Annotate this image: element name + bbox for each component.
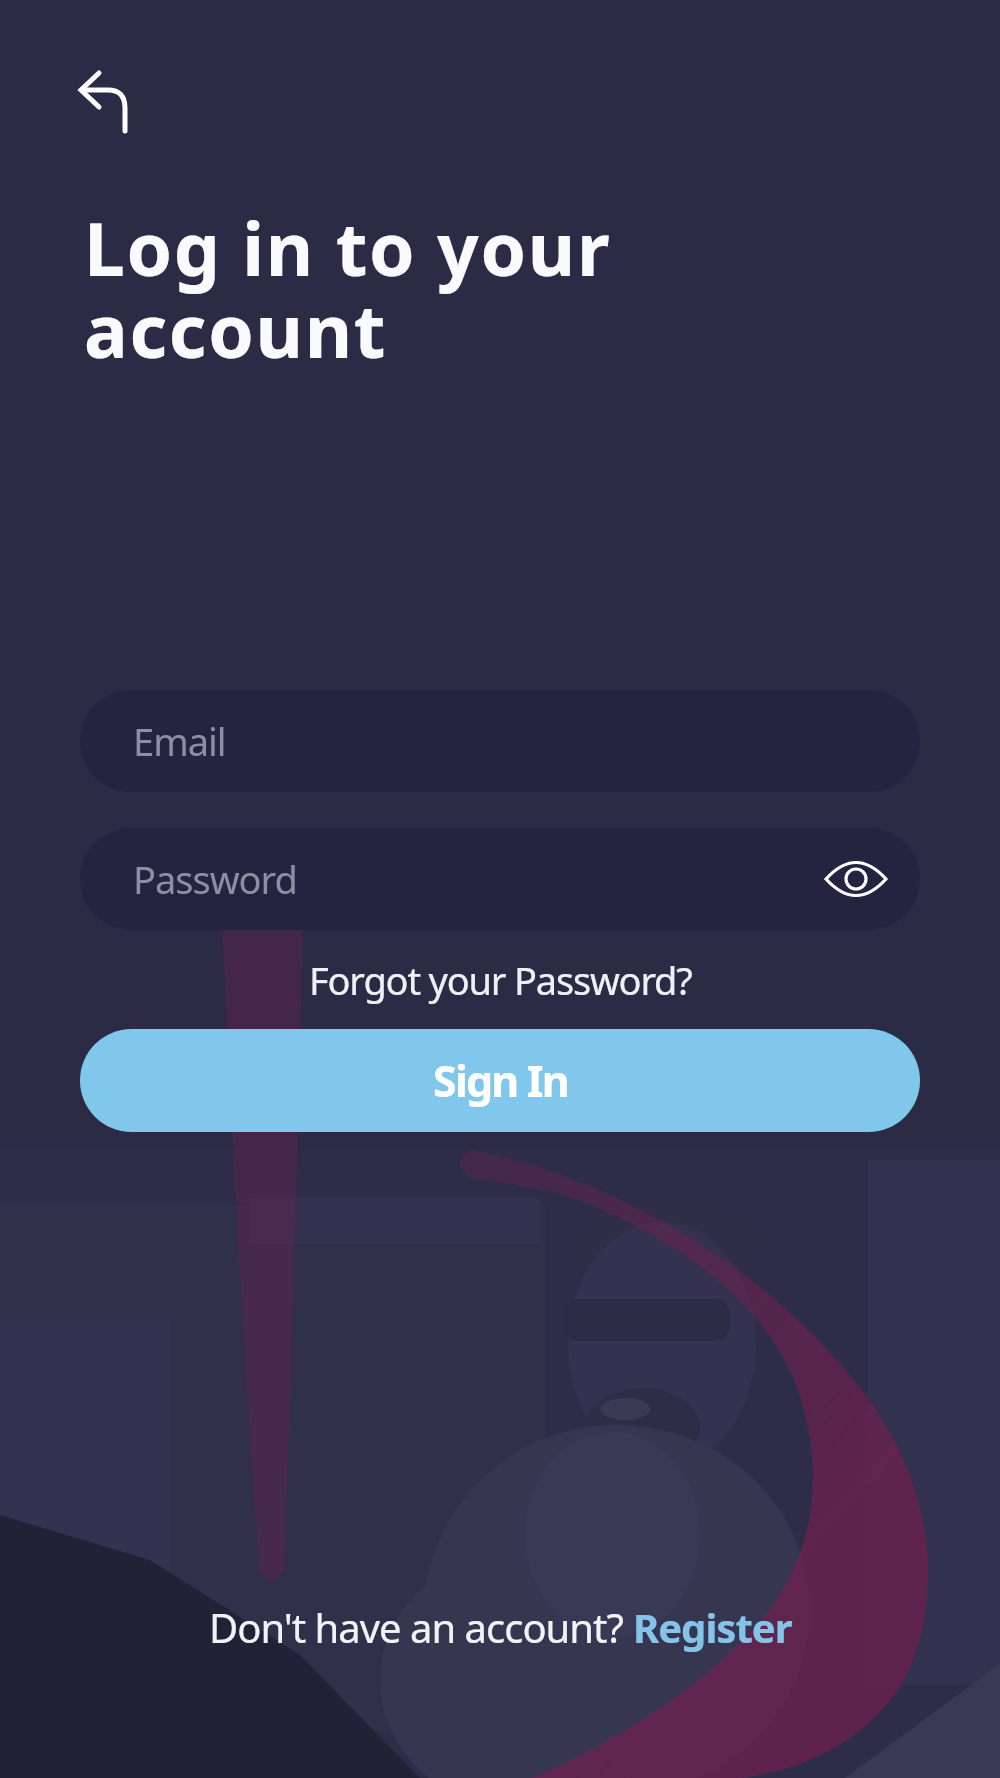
staticText: Don't have an account? [209, 1600, 633, 1654]
staticText: Email [133, 715, 226, 767]
staticText: Password [133, 853, 297, 905]
button[interactable]: Password [80, 828, 920, 930]
button[interactable] [62, 52, 142, 132]
staticText: Sign In [433, 1051, 568, 1110]
button[interactable]: Forgot your Password? [309, 954, 692, 1006]
button[interactable] [824, 857, 888, 901]
staticText: Log in to your account [84, 198, 612, 380]
button[interactable]: Register [633, 1600, 792, 1654]
button[interactable]: Email [80, 690, 920, 792]
button[interactable]: Sign In [80, 1029, 920, 1132]
